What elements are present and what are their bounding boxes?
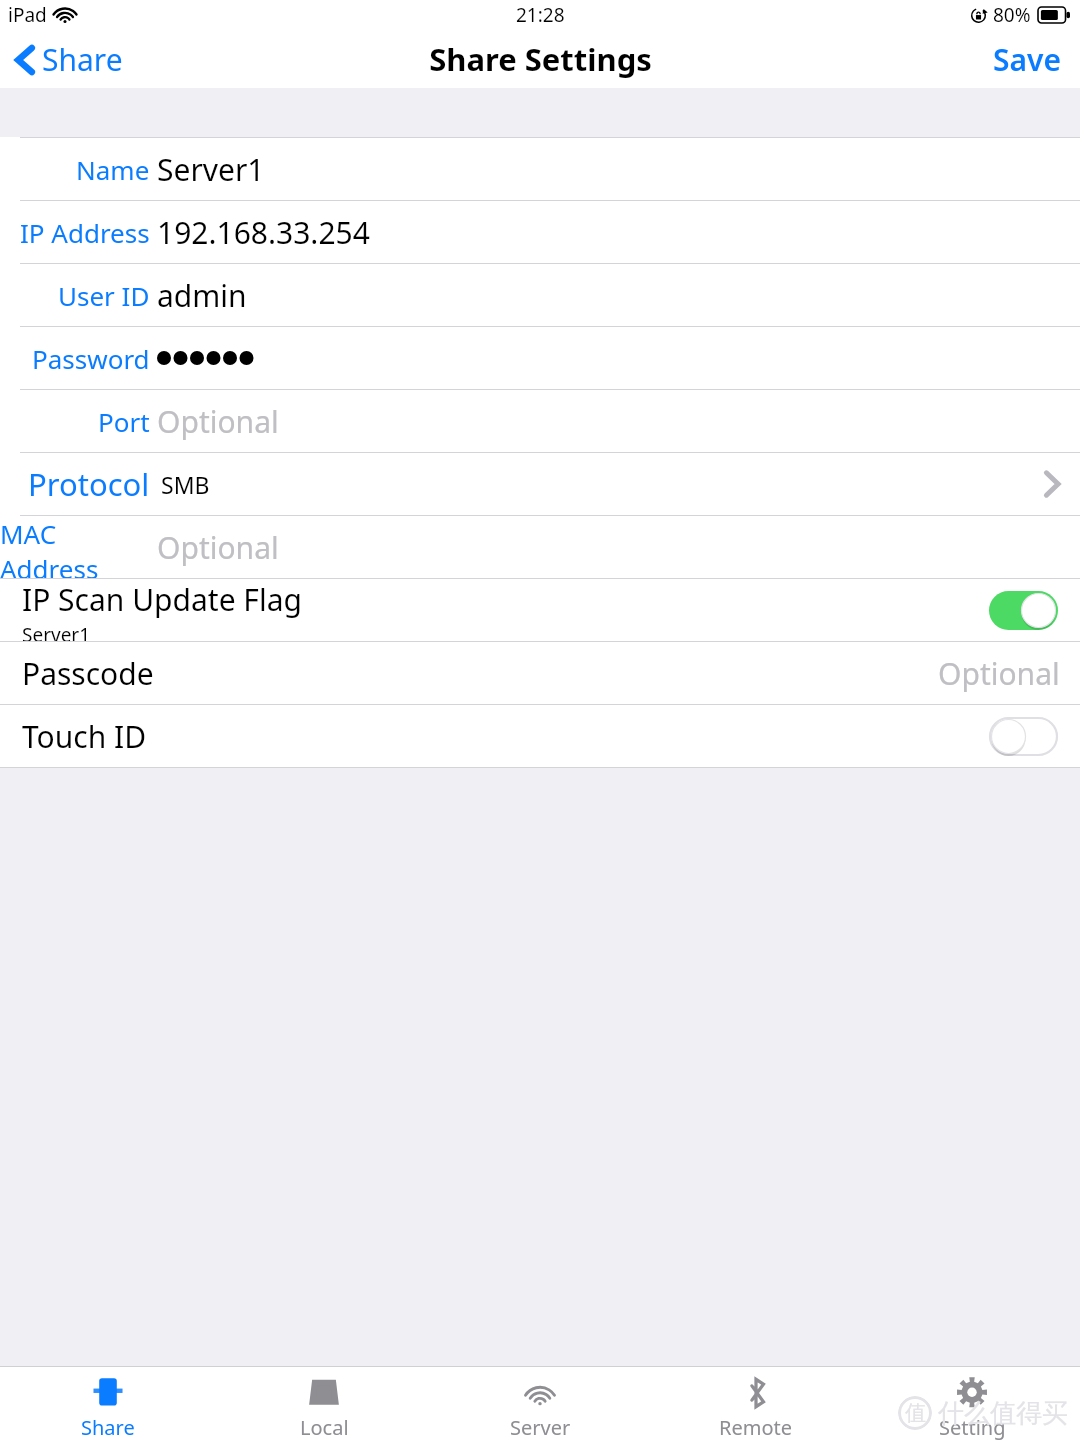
staticText: Password (32, 341, 150, 376)
staticText: Server (510, 1414, 571, 1440)
button[interactable]: Touch ID (0, 705, 1080, 767)
staticText: Optional (157, 527, 279, 568)
button[interactable]: Port (0, 390, 1080, 452)
staticText: 21:28 (516, 2, 565, 28)
staticText: 80% (993, 2, 1031, 28)
button[interactable]: Share (0, 1367, 216, 1440)
button[interactable]: IP Scan Update Flag on (989, 591, 1058, 630)
staticText: Protocol (28, 463, 150, 505)
staticText: 值 (905, 1400, 926, 1426)
button[interactable]: Protocol (0, 453, 1080, 515)
staticText: Optional (157, 401, 279, 442)
staticText: Touch ID (22, 716, 147, 757)
staticText: SMB (161, 469, 210, 500)
staticText: Optional (938, 653, 1060, 694)
button[interactable]: Touch ID off (989, 717, 1058, 756)
other: Open protocol list (1044, 470, 1060, 498)
staticText: Share (42, 39, 123, 80)
button[interactable]: Setting (864, 1367, 1080, 1440)
staticText: IP Address (20, 215, 150, 250)
button[interactable]: Local (216, 1367, 432, 1440)
button[interactable]: Remote (648, 1367, 864, 1440)
staticText: Port (98, 404, 150, 439)
staticText: Passcode (22, 653, 154, 694)
staticText: Share (81, 1414, 135, 1440)
staticText: Server1 (157, 149, 265, 190)
staticText: Local (300, 1414, 349, 1440)
staticText: iPad (8, 2, 47, 28)
button[interactable]: Passcode (0, 642, 1080, 704)
button[interactable]: MAC Address (0, 516, 1080, 578)
staticText: admin (157, 275, 247, 316)
button[interactable]: User ID (0, 264, 1080, 326)
button[interactable]: Server (432, 1367, 648, 1440)
button[interactable]: Password (0, 327, 1080, 389)
button[interactable]: IP Scan Update Flag (0, 579, 1080, 641)
button[interactable]: Name (0, 138, 1080, 200)
staticText: Setting (939, 1414, 1006, 1440)
staticText: Save (993, 39, 1062, 80)
staticText: Share Settings (429, 38, 652, 80)
staticText: MAC Address (0, 516, 150, 578)
staticText: 什么值得买 (938, 1397, 1068, 1430)
button[interactable]: IP Address (0, 201, 1080, 263)
staticText: 192.168.33.254 (157, 212, 370, 253)
staticText: Name (76, 152, 150, 187)
staticText: Remote (719, 1414, 793, 1440)
staticText: Server1 (22, 622, 91, 641)
staticText: IP Scan Update Flag (22, 579, 302, 620)
button[interactable]: Share (0, 33, 137, 86)
button[interactable]: Save (975, 31, 1080, 88)
staticText: User ID (58, 278, 150, 313)
